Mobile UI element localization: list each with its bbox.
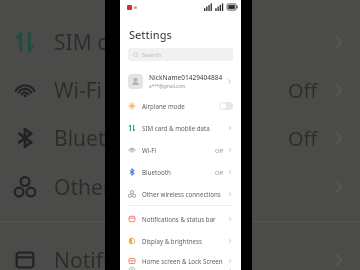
button[interactable]: Airplane mode	[120, 95, 241, 117]
staticText: Display & brightness	[142, 237, 227, 245]
staticText: Other wi	[54, 173, 360, 202]
staticText: Search	[142, 51, 161, 59]
button[interactable]: Bluetooth	[120, 161, 241, 183]
staticText: Bluetooth	[54, 124, 360, 153]
staticText: Off	[288, 125, 318, 152]
button[interactable]: Notifications & status bar	[120, 208, 241, 230]
staticText: Airplane mode	[142, 102, 219, 110]
button[interactable]: NickName01429404884	[120, 69, 241, 93]
staticText: SIM card & mobile data	[142, 124, 227, 132]
button[interactable]: Other wireless connections	[120, 183, 241, 205]
staticText: Notificat	[54, 246, 360, 270]
staticText: Other wireless connections	[142, 190, 227, 198]
staticText: NickName01429404884	[149, 73, 223, 82]
staticText: Bluetooth	[142, 168, 215, 176]
button[interactable]: Wi-Fi	[120, 139, 241, 161]
button[interactable]: SIM card & mobile data	[120, 117, 241, 139]
button[interactable]: Search	[128, 48, 233, 61]
button[interactable]: Home screen & Lock Screen Magazine	[120, 252, 241, 270]
staticText: Off	[215, 147, 224, 154]
staticText: Home screen & Lock Screen Magazine	[142, 257, 227, 265]
button[interactable]: Display & brightness	[120, 230, 241, 252]
staticText: Off	[288, 77, 318, 104]
staticText: Wi-Fi	[54, 76, 360, 105]
button[interactable]: Airplane mode toggle	[219, 102, 233, 110]
staticText: Off	[215, 169, 224, 176]
staticText: Notifications & status bar	[142, 215, 227, 223]
staticText: Settings	[129, 27, 172, 42]
staticText: Wi-Fi	[142, 146, 215, 154]
staticText: SIM card	[54, 28, 360, 57]
staticText: a***@gmail.com	[149, 83, 186, 89]
